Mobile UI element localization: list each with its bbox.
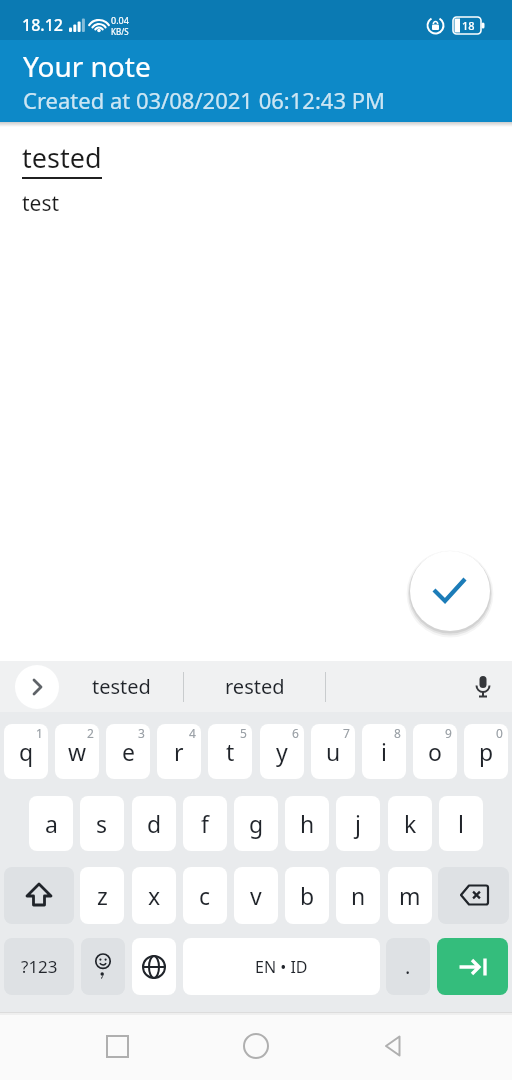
staticText: 9 (445, 725, 452, 741)
staticText: e (122, 736, 135, 767)
button[interactable]: h (285, 796, 329, 851)
button[interactable]: m (388, 867, 432, 924)
button[interactable]: n (336, 867, 380, 924)
staticText: n (351, 880, 366, 911)
staticText: s (96, 808, 108, 839)
button[interactable]: s (80, 796, 124, 851)
button[interactable] (95, 1024, 139, 1068)
staticText: 3 (138, 725, 145, 741)
button[interactable]: EN • ID (183, 938, 380, 995)
staticText: v (250, 880, 262, 911)
staticText: g (249, 808, 264, 839)
staticText: d (147, 808, 162, 839)
staticText: h (300, 808, 315, 839)
button[interactable] (81, 938, 125, 995)
button[interactable]: z (80, 867, 124, 924)
staticText: b (300, 880, 315, 911)
staticText: ?123 (21, 955, 58, 978)
button[interactable]: ?123 (4, 938, 74, 995)
staticText: y (276, 736, 288, 767)
staticText: 0 (496, 725, 503, 741)
staticText: x (148, 880, 161, 911)
button[interactable]: r (157, 724, 201, 779)
button[interactable]: j (336, 796, 380, 851)
button[interactable]: a (29, 796, 73, 851)
button[interactable]: tested (59, 661, 183, 712)
button[interactable] (437, 938, 508, 995)
staticText: KB/S (111, 26, 129, 37)
staticText: 18.12 (22, 14, 63, 36)
staticText: a (45, 808, 58, 839)
staticText: 6 (292, 725, 299, 741)
staticText: 2 (87, 725, 94, 741)
button[interactable]: q (4, 724, 48, 779)
button[interactable] (410, 551, 490, 631)
staticText: o (428, 736, 442, 767)
staticText: c (199, 880, 211, 911)
staticText: EN • ID (255, 956, 308, 978)
button[interactable] (132, 938, 176, 995)
button[interactable]: u (311, 724, 355, 779)
button[interactable] (438, 867, 509, 924)
staticText: j (355, 808, 361, 839)
staticText: f (201, 808, 209, 839)
button[interactable] (234, 1024, 278, 1068)
button[interactable]: rested (184, 661, 325, 712)
staticText: tested (22, 139, 102, 176)
staticText: t (226, 736, 235, 767)
staticText: m (399, 880, 421, 911)
button[interactable]: f (183, 796, 227, 851)
button[interactable]: o (413, 724, 457, 779)
staticText: i (381, 736, 387, 767)
staticText: p (479, 736, 494, 767)
staticText: r (174, 736, 184, 767)
button[interactable]: e (106, 724, 150, 779)
button[interactable]: x (132, 867, 176, 924)
button[interactable]: b (285, 867, 329, 924)
staticText: test (22, 189, 60, 218)
button[interactable] (372, 1024, 416, 1068)
button[interactable]: k (388, 796, 432, 851)
button[interactable]: y (260, 724, 304, 779)
button[interactable]: w (55, 724, 99, 779)
button[interactable]: i (362, 724, 406, 779)
button[interactable]: t (208, 724, 252, 779)
staticText: 0.04 (111, 14, 129, 26)
button[interactable] (4, 867, 74, 924)
button[interactable] (15, 665, 59, 709)
staticText: rested (225, 673, 285, 700)
button[interactable]: p (464, 724, 508, 779)
staticText: 7 (343, 725, 350, 741)
staticText: u (326, 736, 341, 767)
button[interactable] (461, 665, 505, 709)
staticText: 8 (394, 725, 401, 741)
staticText: 1 (36, 725, 43, 741)
staticText: z (97, 880, 108, 911)
staticText: q (19, 736, 34, 767)
staticText: 4 (189, 725, 196, 741)
button[interactable]: v (234, 867, 278, 924)
staticText: l (458, 808, 464, 839)
staticText: Created at 03/08/2021 06:12:43 PM (23, 85, 385, 115)
button[interactable]: d (132, 796, 176, 851)
staticText: . (405, 953, 411, 980)
staticText: 18 (462, 18, 475, 33)
staticText: k (404, 808, 417, 839)
button[interactable]: . (386, 938, 430, 995)
staticText: Your note (23, 47, 151, 85)
button[interactable]: g (234, 796, 278, 851)
button[interactable]: l (439, 796, 483, 851)
staticText: w (68, 736, 87, 767)
staticText: tested (92, 673, 151, 700)
staticText: 5 (240, 725, 247, 741)
button[interactable]: c (183, 867, 227, 924)
